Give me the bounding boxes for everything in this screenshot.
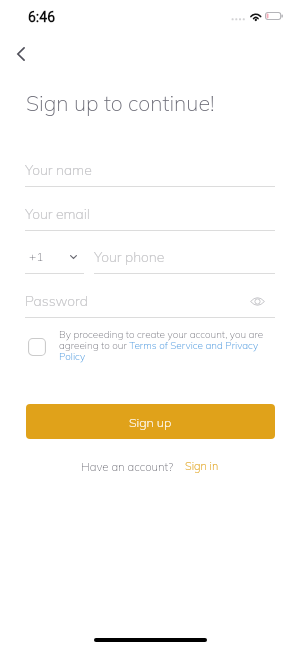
- button[interactable]: By proceeding to create your account, yo…: [25, 327, 275, 367]
- staticText: Have an account?: [81, 459, 174, 473]
- staticText: Your phone: [94, 248, 165, 266]
- staticText: Sign in: [185, 459, 219, 473]
- staticText: Your name: [25, 161, 92, 179]
- button[interactable]: Password: [25, 289, 275, 318]
- staticText: By proceeding to create your account, yo…: [59, 328, 265, 362]
- button[interactable]: Your email: [25, 202, 275, 231]
- button[interactable]: Your name: [25, 158, 275, 187]
- staticText: Your email: [25, 205, 90, 223]
- staticText: Sign up to continue!: [26, 89, 215, 116]
- staticText: Sign up: [129, 414, 172, 430]
- staticText: Password: [25, 292, 88, 310]
- staticText: +1: [29, 249, 44, 264]
- button[interactable]: Show password: [245, 289, 269, 313]
- button[interactable]: Sign in: [185, 459, 219, 473]
- button[interactable]: +1: [25, 245, 84, 274]
- button[interactable]: Sign up: [26, 404, 275, 439]
- staticText: 6:46: [28, 9, 55, 25]
- button[interactable]: Your phone: [94, 245, 275, 274]
- button[interactable]: Back: [0, 34, 40, 74]
